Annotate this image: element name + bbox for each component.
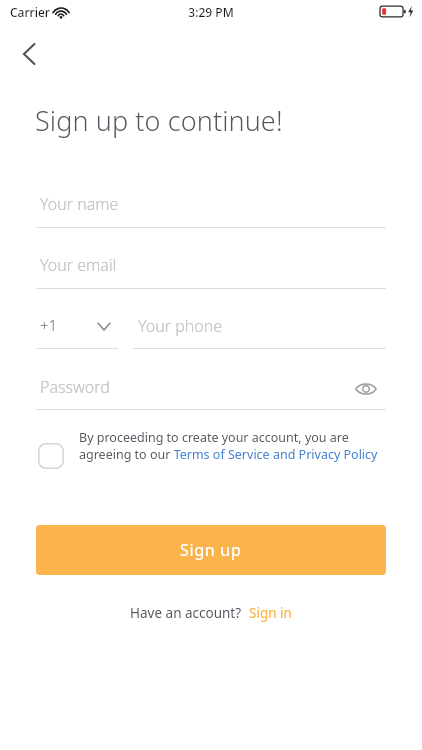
staticText: Carrier	[10, 4, 50, 20]
button[interactable]: Sign in	[242, 604, 292, 622]
staticText: 3:29 PM	[0, 4, 422, 20]
button[interactable]: Sign up	[36, 525, 386, 575]
staticText: By proceeding to create your account, yo…	[79, 429, 379, 463]
button[interactable]: Password	[36, 371, 346, 409]
staticText: Your phone	[138, 315, 223, 337]
staticText: Password	[40, 376, 110, 398]
staticText: Your email	[40, 254, 117, 276]
staticText: Your name	[40, 193, 119, 215]
staticText: Sign in	[242, 604, 292, 622]
staticText: Sign up	[180, 539, 242, 561]
staticText: Have an account?	[130, 604, 242, 622]
button[interactable]: Your email	[36, 249, 386, 289]
button[interactable]: Accept terms checkbox	[38, 443, 64, 469]
button[interactable]: Back	[8, 32, 52, 76]
button[interactable]: Your phone	[133, 310, 386, 348]
button[interactable]: By proceeding to create your account, yo…	[79, 429, 379, 463]
staticText: +1	[40, 315, 58, 335]
button[interactable]: Country code +1	[36, 310, 118, 348]
staticText: Sign up to continue!	[35, 102, 283, 139]
button[interactable]: Show password	[346, 369, 386, 409]
button[interactable]: Your name	[36, 188, 386, 228]
